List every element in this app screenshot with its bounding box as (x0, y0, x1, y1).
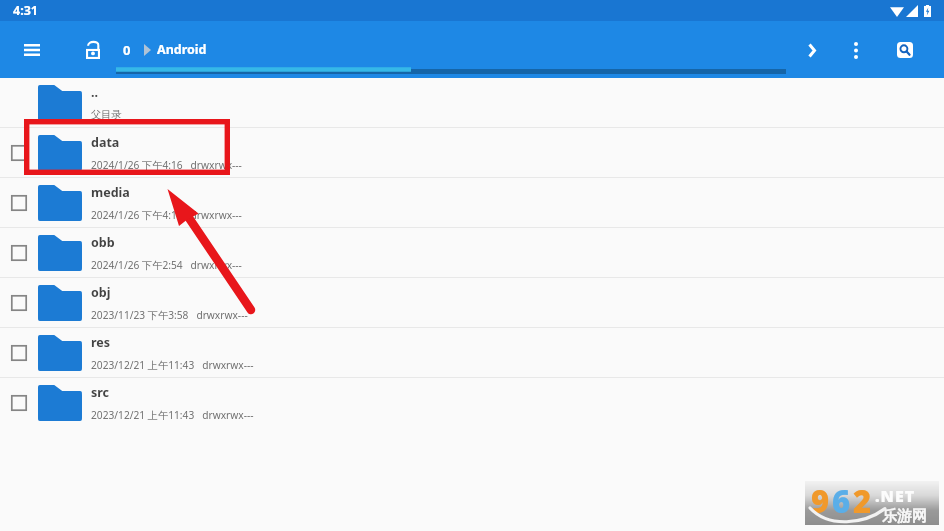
staticText: Android (157, 41, 207, 58)
button[interactable]: data (0, 128, 944, 177)
staticText: 9 (811, 480, 832, 522)
staticText: 2024/1/26 下午2:54 drwxrwx--- (91, 258, 242, 272)
staticText: .NET (875, 485, 916, 507)
button[interactable]: obb (0, 228, 944, 277)
staticText: obb (91, 234, 115, 251)
button[interactable]: Menu (8, 26, 55, 73)
staticText: media (91, 184, 130, 201)
staticText: obj (91, 284, 111, 301)
staticText: 6 (832, 480, 853, 522)
button[interactable]: .. (0, 78, 944, 127)
staticText: data (91, 134, 120, 151)
staticText: 2023/12/21 上午11:43 drwxrwx--- (91, 408, 254, 422)
staticText: 0 (123, 41, 131, 59)
button[interactable]: media (0, 178, 944, 227)
staticText: src (91, 384, 110, 401)
staticText: res (91, 334, 111, 351)
staticText: 2024/1/26 下午4:16 drwxrwx--- (91, 208, 242, 222)
button[interactable]: Search (883, 28, 927, 72)
staticText: 2023/11/23 下午3:58 drwxrwx--- (91, 308, 248, 322)
staticText: .. (91, 84, 99, 101)
button[interactable]: Lock (78, 35, 108, 65)
button[interactable]: Forward (790, 28, 834, 72)
button[interactable]: src (0, 378, 944, 428)
button[interactable]: obj (0, 278, 944, 327)
staticText: 乐游网 (882, 507, 927, 526)
button[interactable]: res (0, 328, 944, 377)
staticText: 2 (853, 480, 874, 522)
staticText: 4:31 (13, 2, 38, 19)
staticText: 2023/12/21 上午11:43 drwxrwx--- (91, 358, 254, 372)
staticText: 2024/1/26 下午4:16 drwxrwx--- (91, 158, 242, 172)
staticText: 父目录 (91, 108, 122, 121)
button[interactable]: More options (834, 28, 878, 72)
